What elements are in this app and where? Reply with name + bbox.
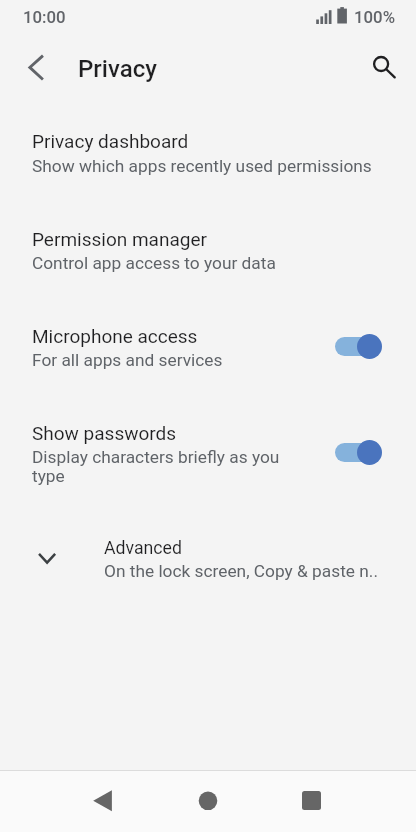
button[interactable]: Toggle — [331, 436, 387, 470]
button[interactable]: Back — [14, 45, 58, 89]
staticText: 10:00 — [23, 7, 66, 27]
button[interactable] — [0, 217, 416, 281]
staticText: Advanced — [104, 538, 182, 559]
button[interactable] — [0, 315, 416, 379]
staticText: Show passwords — [32, 422, 177, 444]
staticText: Control app access to your data — [32, 253, 276, 273]
staticText: Privacy dashboard — [32, 130, 189, 152]
staticText: Microphone access — [32, 325, 198, 347]
staticText: On the lock screen, Copy & paste n.. — [104, 561, 378, 581]
staticText: Privacy — [78, 55, 157, 83]
button[interactable] — [0, 520, 416, 590]
button[interactable] — [0, 412, 416, 494]
button[interactable]: Home — [184, 778, 232, 826]
staticText: Show which apps recently used permission… — [32, 156, 372, 176]
button[interactable]: Toggle — [331, 330, 387, 364]
staticText: 100% — [354, 7, 395, 27]
staticText: Permission manager — [32, 228, 207, 250]
button[interactable]: Search — [360, 45, 404, 89]
staticText: For all apps and services — [32, 350, 223, 370]
button[interactable]: Recent apps — [288, 778, 336, 826]
staticText: Display characters briefly as you — [32, 447, 280, 467]
button[interactable] — [0, 120, 416, 184]
button[interactable]: Back — [80, 778, 128, 826]
staticText: type — [32, 466, 65, 486]
